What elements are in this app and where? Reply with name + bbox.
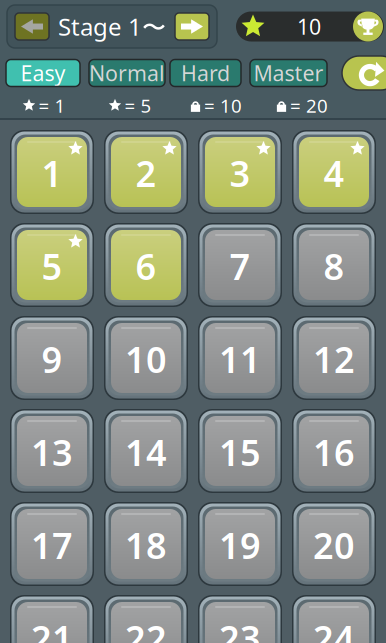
staticText: 9 [41,335,62,383]
button[interactable]: Master [250,59,327,86]
staticText: 10 [125,335,167,383]
staticText: 4 [323,149,344,197]
button[interactable]: 13 [10,409,94,493]
staticText: Hard [181,59,230,87]
button[interactable]: 14 [104,409,188,493]
staticText: = 10 [204,93,242,118]
button[interactable]: 23 [198,595,282,643]
button[interactable]: Reset progress [342,56,386,90]
button[interactable]: 15 [198,409,282,493]
staticText: 10 [297,12,321,41]
button[interactable]: 1 [10,130,94,214]
staticText: 22 [125,614,167,643]
staticText: = 20 [290,93,328,118]
staticText: 16 [313,428,355,476]
staticText: 15 [219,428,261,476]
staticText: = 5 [124,93,151,118]
button[interactable]: 11 [198,316,282,400]
button[interactable]: 19 [198,502,282,586]
button[interactable]: 3 [198,130,282,214]
staticText: 8 [323,242,344,290]
staticText: Normal [89,59,165,87]
button[interactable]: 8 [292,223,376,307]
staticText: Master [253,59,323,87]
staticText: Easy [20,59,65,87]
button[interactable]: 4 [292,130,376,214]
staticText: 12 [313,335,355,383]
button[interactable]: 16 [292,409,376,493]
staticText: 3 [229,149,250,197]
button[interactable]: 5 [10,223,94,307]
button[interactable]: 20 [292,502,376,586]
button[interactable]: Next stage [175,13,209,40]
staticText: 13 [31,428,73,476]
button[interactable]: 18 [104,502,188,586]
button[interactable]: Trophies [353,11,383,41]
staticText: 6 [135,242,156,290]
button[interactable]: 6 [104,223,188,307]
staticText: 24 [313,614,355,643]
button[interactable]: 2 [104,130,188,214]
staticText: 11 [219,335,261,383]
button[interactable]: 17 [10,502,94,586]
staticText: 14 [125,428,167,476]
staticText: 7 [229,242,250,290]
button[interactable]: 12 [292,316,376,400]
button[interactable]: 22 [104,595,188,643]
button[interactable]: Previous stage [15,13,49,40]
button[interactable]: Easy [6,59,80,86]
staticText: 20 [313,521,355,569]
staticText: = 1 [38,93,65,118]
staticText: 19 [219,521,261,569]
staticText: 2 [135,149,156,197]
button[interactable]: 9 [10,316,94,400]
staticText: Stage 1〜 [58,10,166,42]
staticText: 18 [125,521,167,569]
staticText: 23 [219,614,261,643]
button[interactable]: Normal [89,59,165,86]
button[interactable]: 24 [292,595,376,643]
staticText: 5 [41,242,62,290]
button[interactable]: 7 [198,223,282,307]
staticText: 1 [41,149,62,197]
button[interactable]: 21 [10,595,94,643]
staticText: 17 [31,521,73,569]
button[interactable]: 10 [104,316,188,400]
button[interactable]: Hard [170,59,241,86]
staticText: 21 [31,614,73,643]
